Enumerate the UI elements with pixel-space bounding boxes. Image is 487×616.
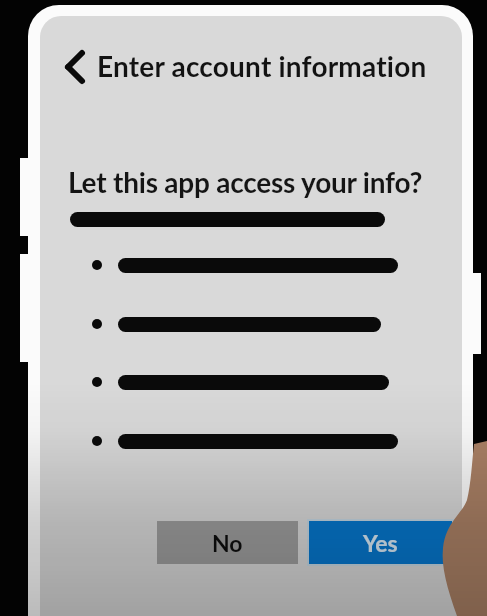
staticText: Enter account information <box>97 49 427 83</box>
button[interactable]: Yes <box>309 521 452 564</box>
staticText: Let this app access your info? <box>68 165 423 199</box>
button[interactable]: No <box>157 521 298 564</box>
staticText: No <box>212 529 243 557</box>
button[interactable]: Back <box>55 41 95 93</box>
staticText: Yes <box>363 529 398 557</box>
